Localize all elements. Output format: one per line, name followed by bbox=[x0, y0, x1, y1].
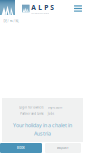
staticText: Austria bbox=[34, 130, 51, 137]
button[interactable]: EN bbox=[9, 19, 12, 23]
button[interactable]: ENQUIRY bbox=[45, 143, 81, 153]
staticText: Jobs bbox=[48, 112, 54, 115]
staticText: DE bbox=[3, 19, 6, 23]
button[interactable]: DE bbox=[3, 19, 6, 23]
button[interactable]: Partner and Links bbox=[4, 111, 43, 116]
staticText: Your holiday in a chalet in bbox=[13, 122, 72, 129]
button[interactable]: ALPS apartments bbox=[22, 3, 54, 14]
staticText: apartments appartements bbox=[31, 12, 49, 14]
button[interactable]: Jobs bbox=[48, 111, 85, 116]
staticText: EN bbox=[9, 19, 12, 23]
staticText: Login for owners bbox=[19, 106, 43, 109]
staticText: ENQUIRY bbox=[57, 146, 69, 150]
button[interactable]: ALPS home bbox=[0, 0, 15, 15]
staticText: Partner and Links bbox=[20, 112, 43, 115]
button[interactable]: Menu bbox=[72, 3, 84, 14]
button[interactable]: NL bbox=[15, 19, 18, 23]
button[interactable]: BOOK bbox=[0, 143, 42, 153]
button[interactable]: Login for owners bbox=[4, 105, 43, 110]
staticText: BOOK bbox=[17, 146, 25, 150]
staticText: NL bbox=[15, 19, 18, 23]
button[interactable]: Impressum bbox=[48, 105, 85, 110]
staticText: Impressum bbox=[48, 106, 62, 109]
staticText: A L P S bbox=[31, 3, 54, 12]
